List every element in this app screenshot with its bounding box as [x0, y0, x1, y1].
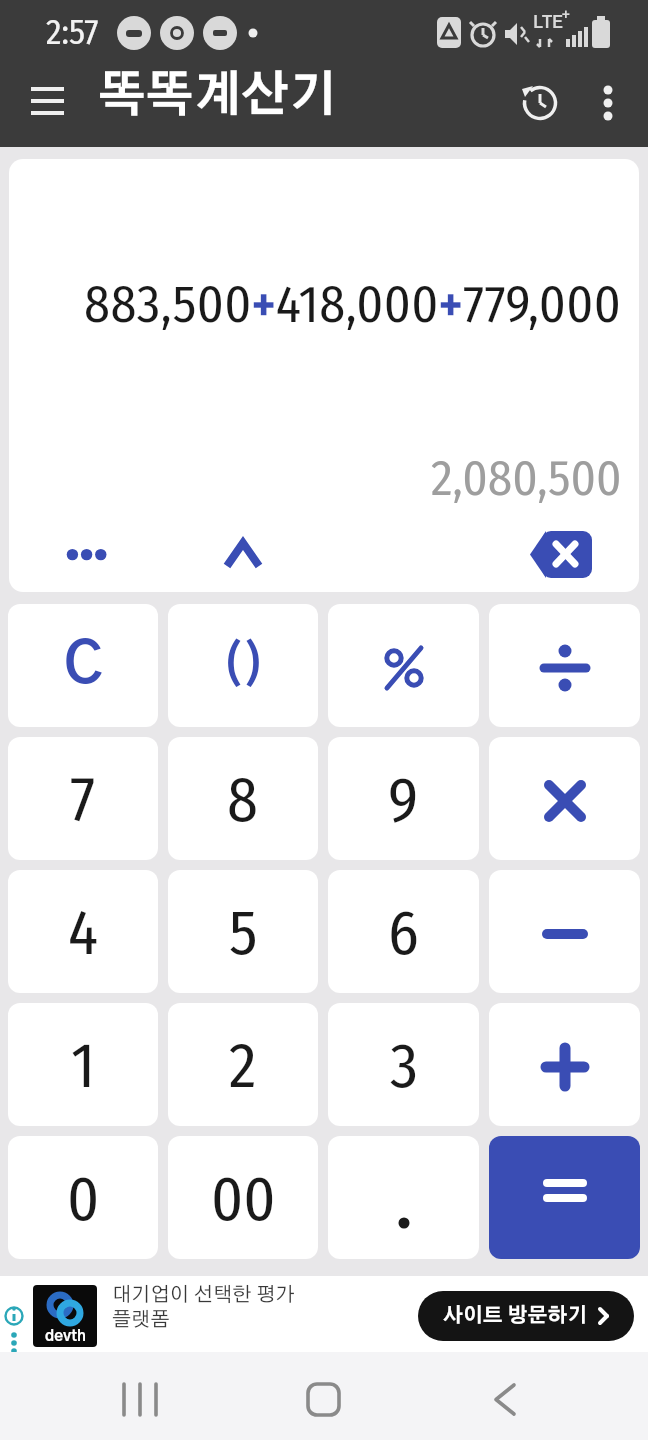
staticText: C — [64, 638, 103, 694]
staticText: 2,080,500 — [431, 449, 622, 508]
staticText: 2:57 — [46, 11, 99, 53]
button[interactable] — [104, 1362, 180, 1430]
staticText: 7 — [70, 763, 96, 837]
staticText: 9 — [388, 763, 419, 837]
button[interactable]: 8 — [168, 737, 318, 860]
staticText: 6 — [388, 896, 419, 970]
button[interactable]: 9 — [328, 737, 479, 860]
staticText: 00 — [211, 1162, 276, 1236]
button[interactable] — [328, 1136, 479, 1259]
button[interactable] — [489, 604, 640, 727]
button[interactable]: 1 — [8, 1003, 158, 1126]
staticText: 3 — [390, 1029, 418, 1103]
button[interactable]: () — [168, 604, 318, 727]
button[interactable] — [221, 535, 265, 575]
staticText: 대기업이 선택한 평가 — [112, 1285, 295, 1305]
button[interactable] — [530, 531, 592, 578]
button[interactable] — [588, 81, 628, 125]
staticText: 2 — [229, 1029, 257, 1103]
button[interactable] — [489, 1003, 640, 1126]
staticText: LTE — [533, 14, 563, 31]
button[interactable]: C — [8, 604, 158, 727]
button[interactable]: 사이트 방문하기 — [418, 1291, 634, 1341]
staticText: 5 — [229, 896, 258, 970]
button[interactable]: 7 — [8, 737, 158, 860]
button[interactable] — [328, 604, 479, 727]
staticText: 플랫폼 — [112, 1310, 170, 1330]
staticText: 똑똑계산기 — [98, 73, 338, 121]
staticText: + — [562, 10, 570, 23]
staticText: 883,500+418,000+779,000 — [84, 273, 622, 335]
button[interactable]: 4 — [8, 870, 158, 993]
button[interactable] — [489, 737, 640, 860]
button[interactable]: 2 — [168, 1003, 318, 1126]
staticText: () — [222, 643, 265, 689]
staticText: devth — [45, 1329, 86, 1344]
staticText: 0 — [67, 1162, 100, 1236]
staticText: 사이트 방문하기 — [443, 1306, 588, 1326]
button[interactable]: 6 — [328, 870, 479, 993]
button[interactable] — [489, 870, 640, 993]
button[interactable] — [286, 1362, 362, 1430]
button[interactable]: 0 — [8, 1136, 158, 1259]
button[interactable]: 00 — [168, 1136, 318, 1259]
staticText: 1 — [71, 1029, 96, 1103]
button[interactable] — [20, 78, 74, 128]
button[interactable] — [53, 535, 117, 575]
button[interactable]: 3 — [328, 1003, 479, 1126]
staticText: 4 — [68, 896, 99, 970]
button[interactable] — [518, 81, 562, 125]
button[interactable] — [489, 1136, 640, 1259]
staticText: 8 — [227, 763, 259, 837]
button[interactable]: 5 — [168, 870, 318, 993]
button[interactable] — [468, 1362, 544, 1430]
